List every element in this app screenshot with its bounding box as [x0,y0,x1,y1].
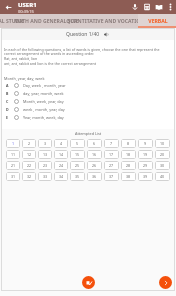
button[interactable]: 5 [70,139,85,148]
staticText: 37 [109,174,114,179]
button[interactable]: MATH AND GENERAL SCIENCE [24,14,78,28]
button[interactable]: 28 [121,161,136,170]
button[interactable]: Microphone [129,0,141,14]
button[interactable]: 11 [6,150,20,159]
button[interactable]: 31 [6,172,20,181]
staticText: 40 [160,174,165,179]
button[interactable]: 3 [38,139,52,148]
staticText: 31 [11,174,16,179]
button[interactable]: Back [2,1,14,13]
button[interactable]: 35 [70,172,85,181]
button[interactable]: 15 [70,150,85,159]
staticText: ant, ant, rabbit and lion is the the cor… [4,61,97,66]
button[interactable]: 24 [54,161,68,170]
staticText: MATH AND GENERAL SCIENCE [14,18,89,25]
staticText: QUANTITATIVE AND VOCATIONAL [66,18,151,25]
button[interactable]: D [4,105,172,113]
button[interactable]: E [4,113,172,121]
staticText: 9 [144,141,147,146]
button[interactable]: 2 [22,139,36,148]
staticText: 25 [75,163,80,168]
button[interactable]: A [4,81,172,89]
button[interactable]: More options [165,0,176,14]
button[interactable]: Calculator [141,0,153,14]
staticText: 32 [27,174,32,179]
staticText: 39 [143,174,148,179]
button[interactable]: 30 [155,161,170,170]
staticText: 38 [126,174,131,179]
staticText: 12 [27,152,32,157]
button[interactable]: 26 [87,161,102,170]
button[interactable]: Next question [159,276,172,289]
button[interactable]: Read question aloud [103,31,110,38]
staticText: 16 [92,152,97,157]
button[interactable]: 19 [138,150,153,159]
button[interactable]: 37 [104,172,119,181]
staticText: 13 [43,152,48,157]
staticText: VERBAL [148,18,168,25]
staticText: 1 [12,141,15,146]
button[interactable]: 13 [38,150,52,159]
button[interactable]: 1 [6,139,20,148]
staticText: 36 [92,174,97,179]
button[interactable]: 27 [104,161,119,170]
button[interactable]: 29 [138,161,153,170]
button[interactable]: 10 [155,139,170,148]
staticText: week , month, year, day [23,107,65,112]
staticText: 3 [44,141,47,146]
staticText: 14 [59,152,64,157]
button[interactable]: 39 [138,172,153,181]
staticText: 4 [60,141,63,146]
button[interactable]: 7 [104,139,119,148]
staticText: 15 [75,152,80,157]
button[interactable]: 4 [54,139,68,148]
staticText: D [6,107,9,112]
button[interactable]: 22 [22,161,36,170]
staticText: 7 [110,141,113,146]
button[interactable]: 33 [38,172,52,181]
staticText: Month, week, year, day [23,99,64,104]
button[interactable]: C [4,97,172,105]
button[interactable]: 18 [121,150,136,159]
button[interactable]: 40 [155,172,170,181]
button[interactable]: QUANTITATIVE AND VOCATIONAL [78,14,138,28]
staticText: 34 [59,174,64,179]
staticText: A [6,83,9,88]
button[interactable]: 14 [54,150,68,159]
staticText: 27 [109,163,114,168]
staticText: 2 [28,141,31,146]
button[interactable]: 21 [6,161,20,170]
button[interactable]: 8 [121,139,136,148]
button[interactable]: 34 [54,172,68,181]
staticText: B [6,91,9,96]
staticText: 6 [93,141,96,146]
staticText: 19 [143,152,148,157]
button[interactable]: Submit test [82,276,95,289]
staticText: Day, week , month, year [23,83,66,88]
staticText: USER1 [18,1,37,9]
staticText: 10 [160,141,165,146]
button[interactable]: 6 [87,139,102,148]
button[interactable]: 25 [70,161,85,170]
button[interactable]: 9 [138,139,153,148]
button[interactable]: 17 [104,150,119,159]
button[interactable]: SOCIAL STUDIES [0,14,24,28]
staticText: 35 [75,174,80,179]
button[interactable]: Dictionary [153,0,165,14]
staticText: 26 [92,163,97,168]
button[interactable]: VERBAL [138,14,176,28]
button[interactable]: 23 [38,161,52,170]
button[interactable]: 36 [87,172,102,181]
staticText: 22 [27,163,32,168]
button[interactable]: 20 [155,150,170,159]
staticText: 23 [43,163,48,168]
button[interactable]: 32 [22,172,36,181]
staticText: Question 1/40 [66,31,100,38]
button[interactable]: 12 [22,150,36,159]
button[interactable]: 38 [121,172,136,181]
staticText: 21 [11,163,16,168]
staticText: day, year, month, week [23,91,64,96]
button[interactable]: B [4,89,172,97]
staticText: Year, month, week, day [23,115,64,120]
button[interactable]: 16 [87,150,102,159]
